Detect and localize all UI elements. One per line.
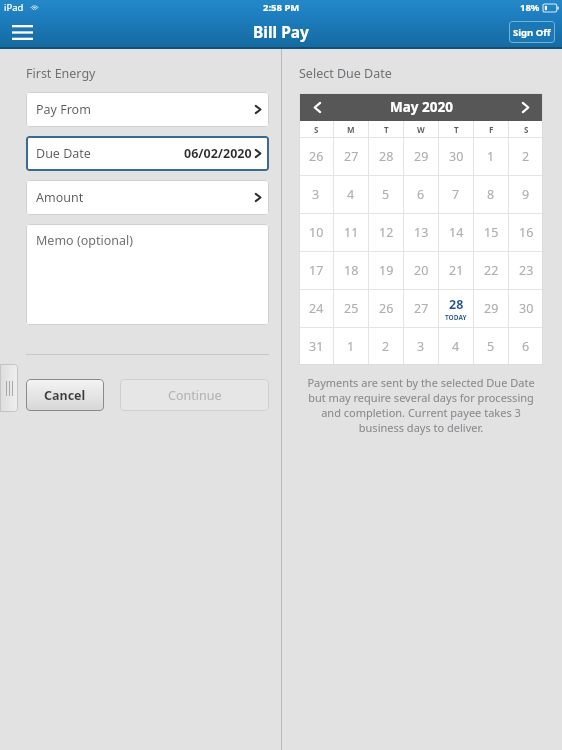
button[interactable]: 29 xyxy=(404,138,438,175)
staticText: First Energy xyxy=(26,65,96,82)
button[interactable]: 3 xyxy=(404,328,438,365)
button[interactable]: 26 xyxy=(299,138,333,175)
button[interactable]: Memo (optional) xyxy=(26,224,269,325)
staticText: 13 xyxy=(414,224,429,241)
staticText: T xyxy=(454,124,459,135)
button[interactable]: 13 xyxy=(404,214,438,251)
staticText: iPad xyxy=(4,1,24,14)
button[interactable]: Cancel xyxy=(26,379,104,411)
staticText: Cancel xyxy=(44,387,86,404)
button[interactable]: Due Date xyxy=(26,136,269,171)
staticText: 20 xyxy=(414,262,429,279)
staticText: 27 xyxy=(344,148,359,165)
staticText: 1 xyxy=(347,338,355,355)
button[interactable]: 5 xyxy=(369,176,403,213)
button[interactable]: 4 xyxy=(439,328,473,365)
button[interactable]: Previous month xyxy=(299,93,335,121)
staticText: 22 xyxy=(484,262,499,279)
staticText: Payments are sent by the selected Due Da… xyxy=(301,375,541,435)
staticText: 18 xyxy=(344,262,359,279)
button[interactable]: 8 xyxy=(474,176,508,213)
staticText: Amount xyxy=(36,189,84,206)
staticText: 4 xyxy=(452,338,460,355)
button[interactable]: 22 xyxy=(474,252,508,289)
staticText: 4 xyxy=(347,186,355,203)
staticText: 1 xyxy=(487,148,495,165)
button[interactable]: 17 xyxy=(299,252,333,289)
button[interactable]: 9 xyxy=(509,176,543,213)
button[interactable]: 15 xyxy=(474,214,508,251)
staticText: 26 xyxy=(379,300,394,317)
button[interactable]: 23 xyxy=(509,252,543,289)
staticText: 06/02/2020 xyxy=(184,145,252,162)
staticText: May 2020 xyxy=(390,98,453,116)
button[interactable]: 30 xyxy=(509,290,543,327)
staticText: 5 xyxy=(382,186,390,203)
staticText: M xyxy=(347,124,355,135)
staticText: 15 xyxy=(484,224,499,241)
button[interactable]: 28 xyxy=(369,138,403,175)
button[interactable]: 6 xyxy=(509,328,543,365)
staticText: Due Date xyxy=(36,145,91,162)
button[interactable]: 3 xyxy=(299,176,333,213)
button[interactable]: 10 xyxy=(299,214,333,251)
button[interactable]: 5 xyxy=(474,328,508,365)
button[interactable]: 28 xyxy=(439,290,473,327)
button[interactable]: 27 xyxy=(404,290,438,327)
button[interactable]: 26 xyxy=(369,290,403,327)
button[interactable]: 6 xyxy=(404,176,438,213)
button[interactable]: 30 xyxy=(439,138,473,175)
button[interactable]: 18 xyxy=(334,252,368,289)
staticText: 26 xyxy=(309,148,324,165)
staticText: 29 xyxy=(484,300,499,317)
staticText: Select Due Date xyxy=(299,65,392,82)
staticText: W xyxy=(417,124,425,135)
button[interactable]: Amount xyxy=(26,180,269,215)
button[interactable]: Continue xyxy=(120,379,269,411)
staticText: 24 xyxy=(309,300,324,317)
staticText: 29 xyxy=(414,148,429,165)
button[interactable]: 27 xyxy=(334,138,368,175)
button[interactable]: 1 xyxy=(334,328,368,365)
button[interactable]: Pay From xyxy=(26,92,269,127)
staticText: 2:58 PM xyxy=(263,1,300,14)
button[interactable]: 12 xyxy=(369,214,403,251)
staticText: TODAY xyxy=(445,313,467,322)
staticText: 25 xyxy=(344,300,359,317)
button[interactable]: 19 xyxy=(369,252,403,289)
staticText: 18% xyxy=(520,1,540,14)
staticText: T xyxy=(384,124,389,135)
staticText: F xyxy=(489,124,494,135)
staticText: 21 xyxy=(449,262,464,279)
staticText: 2 xyxy=(382,338,390,355)
staticText: Continue xyxy=(168,387,222,404)
staticText: 31 xyxy=(309,338,324,355)
button[interactable]: 25 xyxy=(334,290,368,327)
button[interactable]: 7 xyxy=(439,176,473,213)
button[interactable]: 14 xyxy=(439,214,473,251)
button[interactable]: 21 xyxy=(439,252,473,289)
button[interactable]: 2 xyxy=(509,138,543,175)
button[interactable]: Sign Off xyxy=(509,21,555,43)
button[interactable]: 11 xyxy=(334,214,368,251)
staticText: Sign Off xyxy=(513,26,551,39)
button[interactable]: Menu xyxy=(6,16,38,48)
button[interactable]: Drag handle xyxy=(0,364,18,412)
staticText: 16 xyxy=(519,224,534,241)
button[interactable]: 31 xyxy=(299,328,333,365)
button[interactable]: 29 xyxy=(474,290,508,327)
staticText: Pay From xyxy=(36,101,91,118)
staticText: 3 xyxy=(417,338,425,355)
button[interactable]: Next month xyxy=(507,93,543,121)
button[interactable]: 24 xyxy=(299,290,333,327)
button[interactable]: 4 xyxy=(334,176,368,213)
staticText: S xyxy=(314,124,319,135)
button[interactable]: 16 xyxy=(509,214,543,251)
button[interactable]: 1 xyxy=(474,138,508,175)
button[interactable]: 2 xyxy=(369,328,403,365)
staticText: 17 xyxy=(309,262,324,279)
staticText: 14 xyxy=(449,224,464,241)
staticText: 23 xyxy=(519,262,534,279)
staticText: 11 xyxy=(344,224,359,241)
button[interactable]: 20 xyxy=(404,252,438,289)
